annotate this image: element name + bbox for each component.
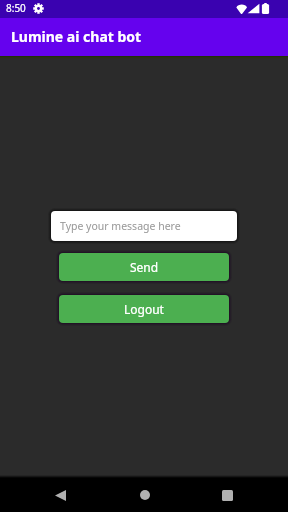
staticText: Logout [124, 301, 164, 317]
button[interactable]: Send [59, 253, 229, 281]
button[interactable]: Type your message here [51, 211, 237, 241]
button[interactable]: Recents [186, 478, 269, 512]
button[interactable]: Home [103, 478, 186, 512]
staticText: 8:50 [6, 1, 26, 15]
staticText: Lumine ai chat bot [11, 27, 142, 46]
button[interactable]: Logout [59, 295, 229, 323]
button[interactable]: Back [18, 478, 103, 512]
staticText: Type your message here [60, 219, 181, 233]
staticText: Send [130, 259, 159, 275]
